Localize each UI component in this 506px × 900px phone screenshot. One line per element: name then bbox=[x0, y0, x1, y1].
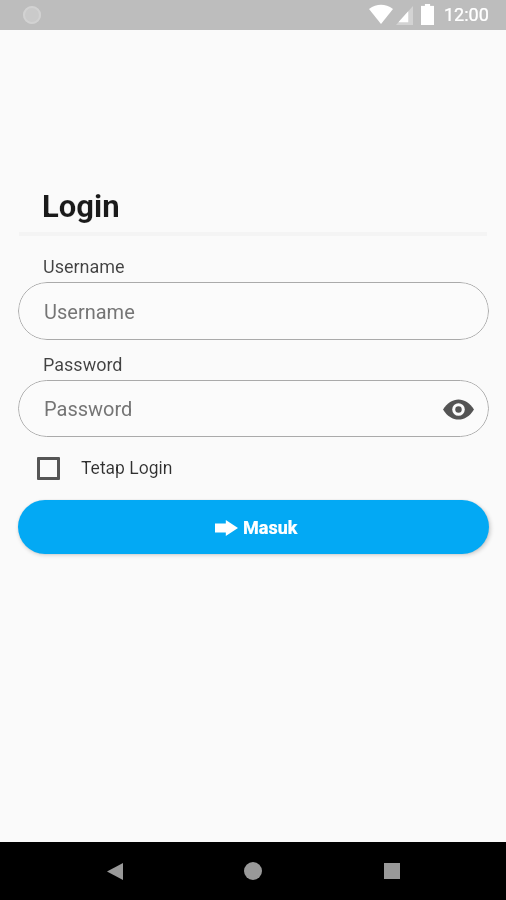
button[interactable]: Back bbox=[91, 847, 139, 895]
staticText: Username bbox=[44, 300, 135, 323]
button[interactable]: Username bbox=[18, 282, 489, 340]
staticText: Masuk bbox=[243, 517, 298, 538]
staticText: Username bbox=[43, 256, 125, 277]
staticText: Password bbox=[43, 354, 123, 375]
button[interactable]: Masuk bbox=[18, 500, 489, 554]
staticText: Password bbox=[44, 397, 133, 420]
button[interactable]: Home bbox=[229, 847, 277, 895]
button[interactable]: Tetap Login bbox=[33, 453, 177, 484]
button[interactable]: Recents bbox=[368, 847, 416, 895]
button[interactable]: Show password bbox=[441, 392, 475, 426]
staticText: Tetap Login bbox=[81, 458, 173, 479]
staticText: 12:00 bbox=[444, 4, 489, 25]
button[interactable]: Password bbox=[18, 380, 489, 437]
staticText: Login bbox=[42, 188, 120, 224]
